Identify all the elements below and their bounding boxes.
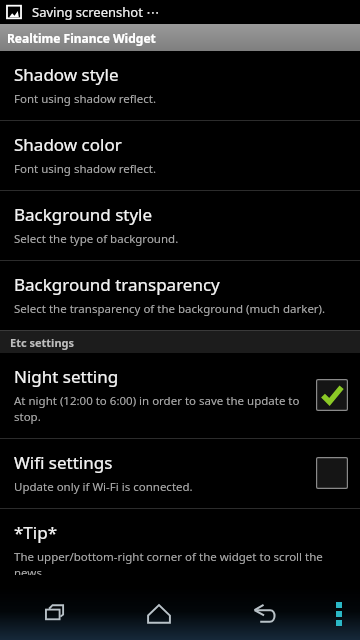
button[interactable]: Shadow style <box>0 51 360 120</box>
staticText: Shadow color <box>14 133 122 156</box>
button[interactable]: Back <box>212 588 318 640</box>
staticText: At night (12:00 to 6:00) in order to sav… <box>14 393 308 425</box>
staticText: Background style <box>14 203 153 226</box>
staticText: Etc settings <box>10 335 75 350</box>
staticText: Update only if Wi-Fi is connected. <box>14 479 193 495</box>
button[interactable]: *Tip* <box>0 509 360 588</box>
button[interactable]: Wifi settings <box>0 439 360 508</box>
staticText: Night setting <box>14 365 119 388</box>
staticText: *Tip* <box>14 521 58 544</box>
staticText: Saving screenshot ⋯ <box>32 3 160 21</box>
button[interactable]: Background transparency <box>0 261 360 330</box>
staticText: Shadow style <box>14 63 119 86</box>
button[interactable]: Background style <box>0 191 360 260</box>
staticText: Font using shadow reflect. <box>14 161 156 177</box>
staticText: The upper/bottom-right corner of the wid… <box>14 549 346 575</box>
button[interactable]: Night setting <box>0 353 360 438</box>
button[interactable]: More options <box>318 588 360 640</box>
staticText: Font using shadow reflect. <box>14 91 156 107</box>
staticText: Wifi settings <box>14 451 113 474</box>
other: Checked <box>316 379 348 411</box>
staticText: Select the transparency of the backgroun… <box>14 301 326 317</box>
staticText: Select the type of background. <box>14 231 179 247</box>
other: Unchecked <box>316 457 348 489</box>
button[interactable]: Recent apps <box>0 588 106 640</box>
staticText: Background transparency <box>14 273 220 296</box>
staticText: Realtime Finance Widget <box>7 30 156 46</box>
button[interactable]: Home <box>106 588 212 640</box>
button[interactable]: Shadow color <box>0 121 360 190</box>
